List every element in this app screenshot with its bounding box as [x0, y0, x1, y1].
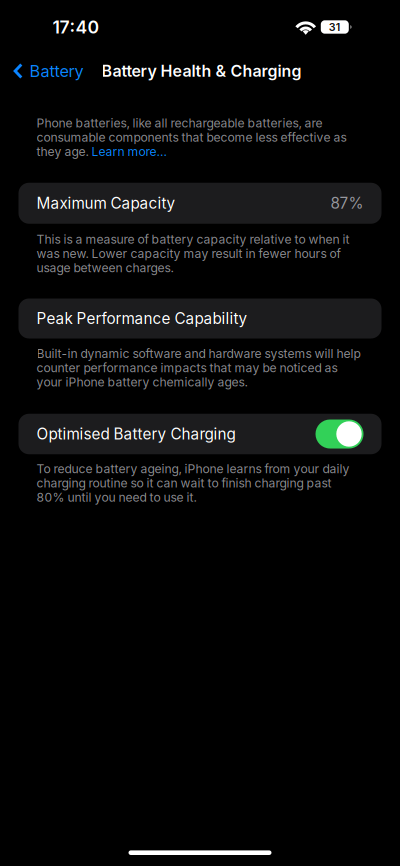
staticText: consumable components that become less e… [36, 130, 346, 145]
staticText: counter performance impacts that may be … [36, 360, 337, 375]
button[interactable]: Optimised Battery Charging [18, 414, 381, 454]
button[interactable]: Battery [14, 54, 83, 88]
staticText: 31 [329, 20, 341, 33]
staticText: This is a measure of battery capacity re… [36, 232, 349, 247]
staticText: 87% [330, 194, 363, 212]
staticText: they age. [36, 144, 91, 159]
staticText: Phone batteries, like all rechargeable b… [36, 116, 322, 130]
staticText: To reduce battery ageing, iPhone learns … [36, 461, 349, 476]
staticText: Learn more… [91, 144, 166, 159]
staticText: was new. Lower capacity may result in fe… [36, 246, 340, 261]
staticText: Optimised Battery Charging [36, 425, 235, 443]
staticText: 80% until you need to use it. [36, 490, 196, 505]
staticText: Peak Performance Capability [36, 309, 247, 328]
staticText: charging routine so it can wait to finis… [36, 476, 331, 490]
staticText: Maximum Capacity [36, 194, 175, 212]
staticText: Battery [29, 61, 83, 81]
staticText: 17:40 [52, 16, 99, 38]
button[interactable]: Maximum Capacity [18, 183, 381, 224]
staticText: Built-in dynamic software and hardware s… [36, 346, 360, 361]
button[interactable]: Peak Performance Capability [18, 298, 381, 338]
staticText: Battery Health & Charging [101, 61, 301, 81]
staticText: usage between charges. [36, 260, 173, 275]
button[interactable]: Learn more… [91, 144, 166, 159]
staticText: your iPhone battery chemically ages. [36, 375, 247, 389]
